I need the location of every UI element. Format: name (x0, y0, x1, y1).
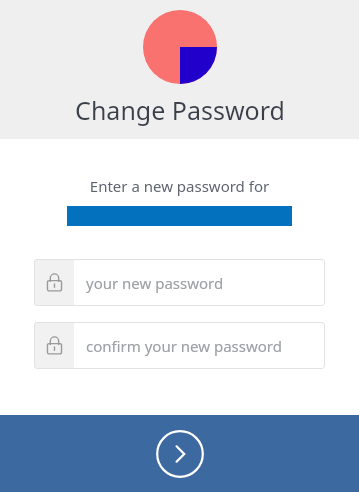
staticText: confirm your new password (86, 336, 282, 356)
button[interactable]: Submit (0, 415, 359, 492)
button[interactable]: your new password (34, 259, 325, 306)
staticText: your new password (86, 273, 224, 293)
button[interactable]: confirm your new password (34, 322, 325, 369)
staticText: Enter a new password for (0, 176, 359, 196)
staticText: Change Password (75, 93, 285, 127)
